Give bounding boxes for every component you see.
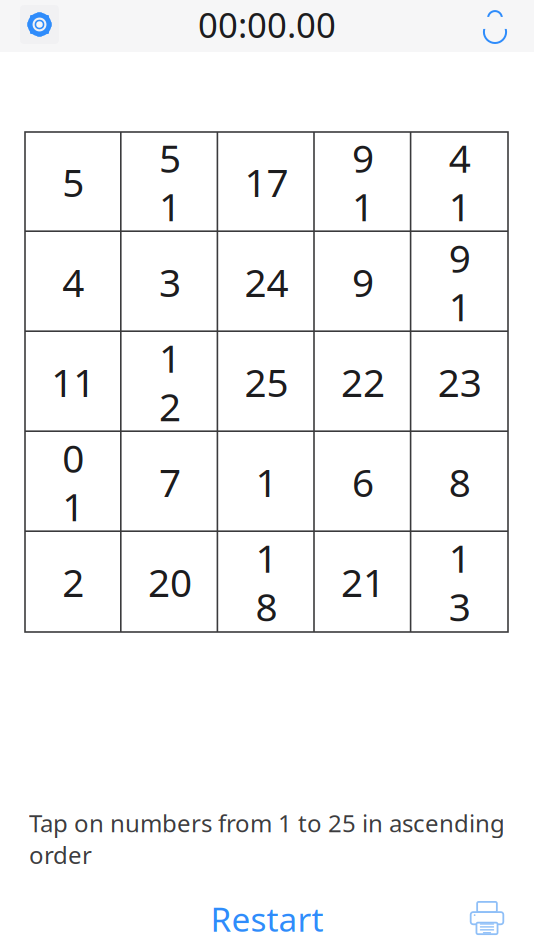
button[interactable]: 1: [218, 532, 315, 632]
button[interactable]: 23: [411, 332, 508, 432]
staticText: 2: [62, 556, 84, 608]
staticText: 22: [341, 356, 385, 408]
staticText: Restart: [210, 897, 323, 941]
button[interactable]: Print: [464, 896, 510, 942]
staticText: 6: [352, 456, 374, 508]
button[interactable]: 4: [25, 232, 122, 332]
button[interactable]: 5: [25, 132, 122, 232]
button[interactable]: 9: [411, 232, 508, 332]
staticText: 4: [449, 132, 471, 183]
staticText: 00:00.00: [198, 1, 336, 47]
staticText: 0: [62, 432, 84, 483]
button[interactable]: 9: [315, 232, 411, 332]
button[interactable]: 1: [411, 532, 508, 632]
button[interactable]: 6: [315, 432, 411, 532]
button[interactable]: 1: [218, 432, 315, 532]
staticText: 1: [255, 456, 277, 508]
staticText: 1: [449, 532, 471, 583]
button[interactable]: 5: [122, 132, 218, 232]
button[interactable]: Settings: [20, 5, 59, 44]
staticText: 4: [62, 256, 84, 308]
button[interactable]: 7: [122, 432, 218, 532]
staticText: 21: [341, 556, 385, 608]
staticText: 1: [255, 532, 277, 583]
staticText: 8: [255, 580, 277, 632]
button[interactable]: 1: [122, 332, 218, 432]
button[interactable]: 2: [25, 532, 122, 632]
button[interactable]: 17: [218, 132, 315, 232]
staticText: 9: [352, 256, 374, 308]
staticText: 7: [159, 456, 181, 508]
staticText: 1: [449, 280, 471, 332]
staticText: 20: [148, 556, 192, 608]
button[interactable]: 8: [411, 432, 508, 532]
staticText: 1: [352, 180, 374, 232]
staticText: 3: [159, 256, 181, 308]
button[interactable]: Profile: [476, 5, 514, 43]
staticText: 9: [352, 132, 374, 183]
staticText: 24: [244, 256, 288, 308]
staticText: 11: [51, 356, 95, 408]
button[interactable]: 9: [315, 132, 411, 232]
button[interactable]: 4: [411, 132, 508, 232]
staticText: 3: [449, 580, 471, 632]
staticText: 1: [62, 480, 84, 532]
button[interactable]: 24: [218, 232, 315, 332]
button[interactable]: 20: [122, 532, 218, 632]
staticText: 5: [159, 132, 181, 183]
staticText: 8: [449, 456, 471, 508]
button[interactable]: 11: [25, 332, 122, 432]
staticText: 25: [244, 356, 288, 408]
staticText: 2: [159, 380, 181, 432]
staticText: Tap on numbers from 1 to 25 in ascending…: [29, 807, 505, 871]
staticText: 1: [159, 180, 181, 232]
button[interactable]: 25: [218, 332, 315, 432]
staticText: 1: [159, 332, 181, 383]
button[interactable]: Restart: [196, 893, 337, 945]
button[interactable]: 22: [315, 332, 411, 432]
staticText: 1: [449, 180, 471, 232]
staticText: 23: [438, 356, 482, 408]
staticText: 17: [244, 156, 288, 208]
button[interactable]: 21: [315, 532, 411, 632]
staticText: 5: [62, 156, 84, 208]
button[interactable]: 0: [25, 432, 122, 532]
staticText: 9: [449, 232, 471, 283]
button[interactable]: 3: [122, 232, 218, 332]
